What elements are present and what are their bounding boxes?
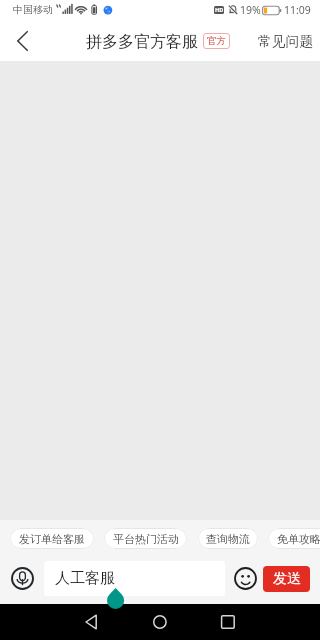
button[interactable]: 平台热门活动 <box>104 528 187 549</box>
staticText: 常见问题 <box>258 33 314 50</box>
staticText: 拼多多官方客服 <box>86 32 198 52</box>
button[interactable]: 常见问题 <box>248 20 320 61</box>
staticText: HD <box>215 6 224 14</box>
staticText: 发订单给客服 <box>19 532 85 546</box>
button[interactable]: 免单攻略 <box>268 528 320 549</box>
staticText: 11:09 <box>284 3 311 17</box>
button[interactable]: 发送 <box>263 566 310 592</box>
button[interactable]: Back <box>68 604 114 640</box>
button[interactable]: Recents <box>205 604 251 640</box>
staticText: 免单攻略 <box>277 532 320 546</box>
button[interactable]: 查询物流 <box>198 528 258 549</box>
staticText: 查询物流 <box>206 532 250 546</box>
button[interactable]: Emoji <box>234 567 257 590</box>
button[interactable]: Home <box>137 604 183 640</box>
button[interactable]: 人工客服 <box>44 561 225 596</box>
staticText: 人工客服 <box>55 569 115 588</box>
staticText: 发送 <box>273 570 301 588</box>
button[interactable]: Back <box>0 20 44 61</box>
staticText: 19% <box>240 3 261 17</box>
staticText: 官方 <box>207 35 226 47</box>
button[interactable]: Voice input <box>11 567 34 590</box>
button[interactable]: 发订单给客服 <box>10 528 94 549</box>
staticText: 平台热门活动 <box>113 532 179 546</box>
staticText: 中国移动 <box>13 3 53 16</box>
